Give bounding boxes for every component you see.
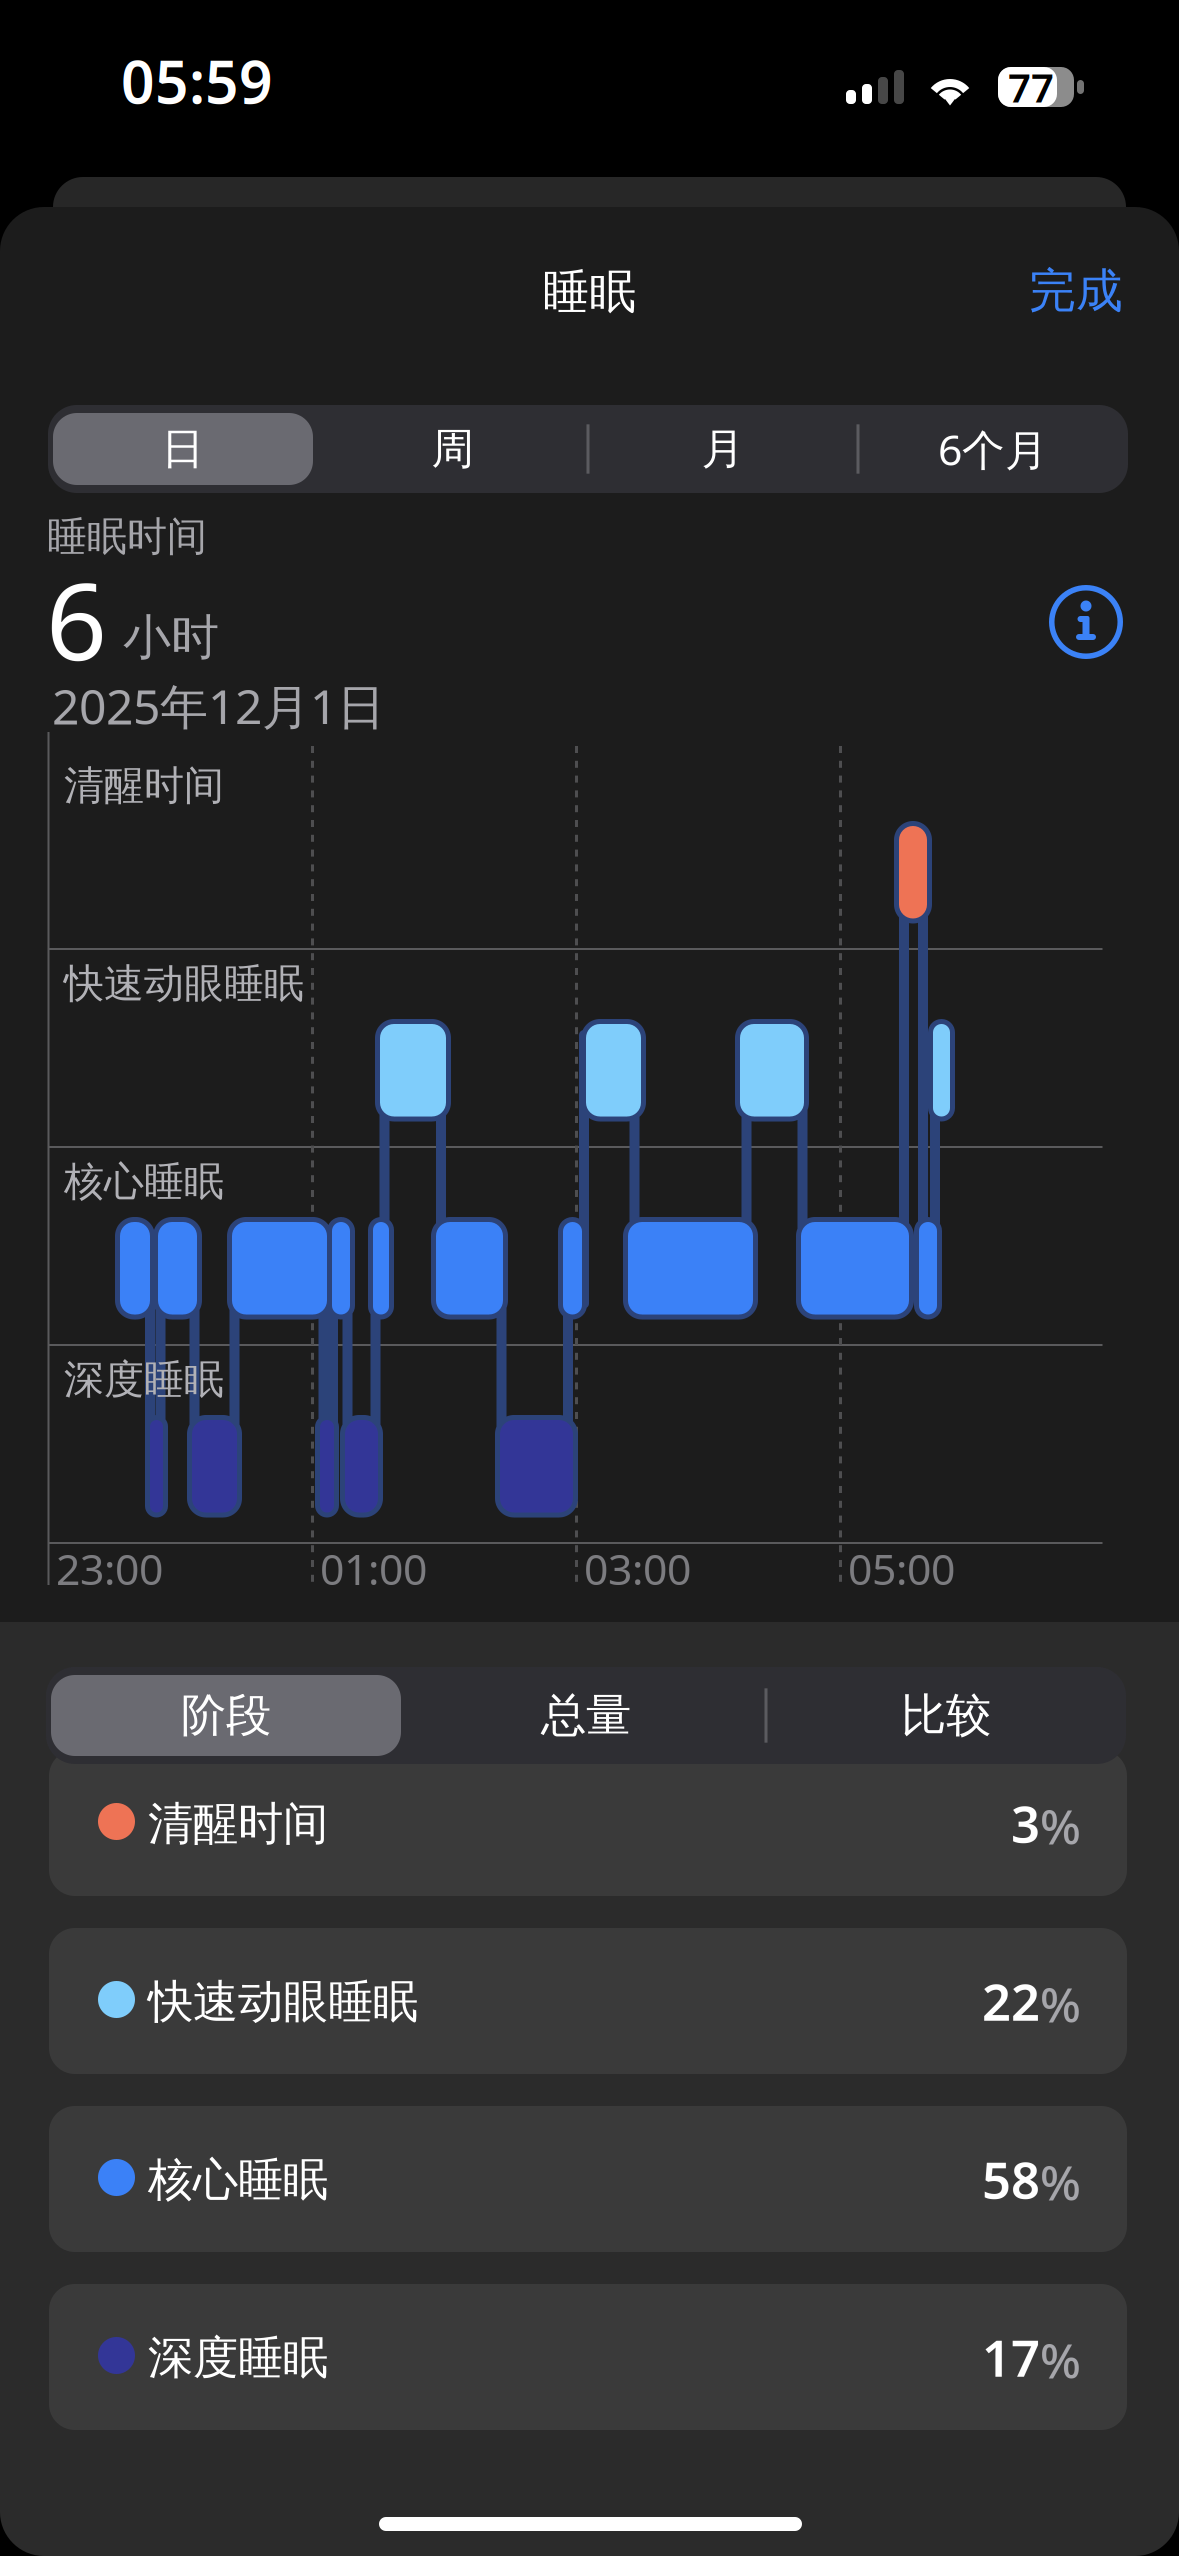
staticText: 清醒时间	[148, 1796, 328, 1852]
staticText: 核心睡眠	[64, 1157, 224, 1206]
staticText: 清醒时间	[64, 761, 224, 810]
staticText: 快速动眼睡眠	[148, 1974, 418, 2030]
staticText: 睡眠	[542, 263, 636, 321]
staticText: 05:00	[848, 1540, 955, 1597]
button[interactable]: 关于睡眠	[1038, 574, 1134, 670]
staticText: 小时	[123, 608, 219, 667]
staticText: 月	[701, 423, 744, 475]
staticText: %	[1040, 1972, 1081, 2036]
staticText: 03:00	[584, 1540, 691, 1597]
button[interactable]: 核心睡眠	[49, 2106, 1127, 2252]
button[interactable]: 6个月	[858, 405, 1128, 493]
staticText: %	[1040, 1794, 1081, 1858]
staticText: %	[1040, 2150, 1081, 2214]
staticText: 6	[46, 548, 107, 690]
staticText: 17	[982, 2323, 1040, 2391]
staticText: 比较	[901, 1688, 991, 1743]
button[interactable]: 清醒时间	[49, 1750, 1127, 1896]
staticText: 6个月	[938, 421, 1048, 477]
staticText: 完成	[1029, 262, 1123, 320]
staticText: 深度睡眠	[148, 2330, 328, 2386]
staticText: 周	[431, 423, 474, 475]
staticText: %	[1040, 2328, 1081, 2392]
staticText: 日	[161, 423, 204, 475]
staticText: 深度睡眠	[64, 1355, 224, 1404]
staticText: 77	[1008, 60, 1054, 113]
staticText: 22	[982, 1967, 1040, 2035]
staticText: 23:00	[56, 1540, 163, 1597]
staticText: 3	[1011, 1789, 1040, 1857]
button[interactable]: 总量	[406, 1667, 766, 1764]
button[interactable]: 日	[48, 405, 318, 493]
staticText: 快速动眼睡眠	[64, 959, 304, 1008]
staticText: 2025年12月1日	[52, 674, 385, 738]
staticText: 总量	[541, 1688, 631, 1743]
button[interactable]: 阶段	[46, 1667, 406, 1764]
staticText: 01:00	[320, 1540, 427, 1597]
button[interactable]: 月	[588, 405, 858, 493]
button[interactable]: 比较	[766, 1667, 1126, 1764]
button[interactable]: 快速动眼睡眠	[49, 1928, 1127, 2074]
button[interactable]: 深度睡眠	[49, 2284, 1127, 2430]
staticText: 核心睡眠	[148, 2152, 328, 2208]
button[interactable]: 完成	[963, 253, 1123, 329]
button[interactable]: 周	[318, 405, 588, 493]
staticText: 阶段	[181, 1688, 271, 1743]
staticText: 05:59	[121, 42, 273, 120]
staticText: 58	[982, 2145, 1040, 2213]
staticText: 睡眠时间	[47, 512, 207, 561]
